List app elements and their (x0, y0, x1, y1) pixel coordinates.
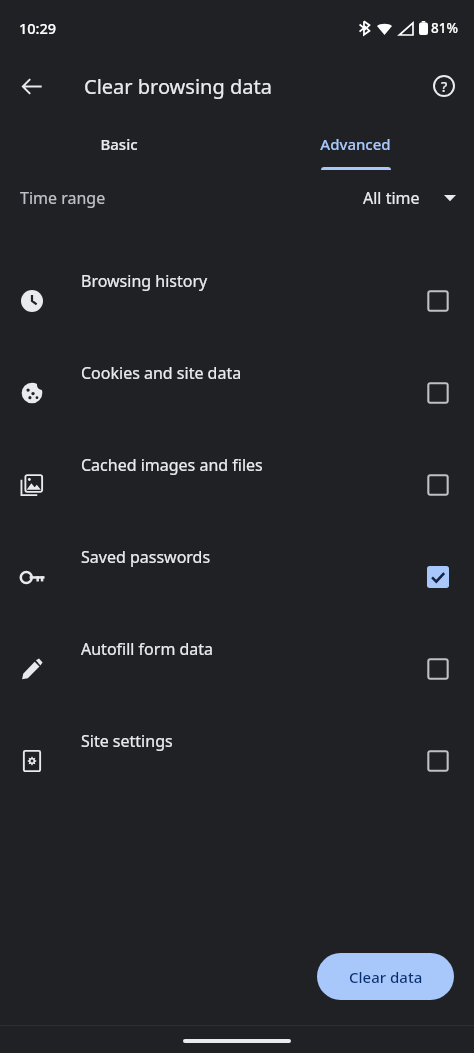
staticText: 10:29 (19, 18, 57, 38)
button[interactable]: Basic (0, 117, 237, 170)
staticText: Autofill form data (81, 638, 214, 660)
staticText: Basic (100, 134, 138, 154)
button[interactable]: Cached images and files (0, 429, 474, 521)
button[interactable]: Clear data (317, 953, 454, 1000)
button[interactable]: Site settings (0, 705, 474, 797)
staticText: Clear data (349, 967, 423, 987)
staticText: Cached images and files (81, 454, 263, 476)
staticText: Advanced (320, 134, 391, 154)
button[interactable]: Advanced (237, 117, 474, 170)
staticText: Time range (20, 187, 106, 209)
button[interactable]: Autofill form data (0, 613, 474, 705)
staticText: All time (363, 187, 420, 209)
staticText: ? (441, 77, 448, 96)
staticText: Cookies and site data (81, 362, 242, 384)
staticText: Clear browsing data (84, 73, 272, 100)
button[interactable]: Time range (0, 170, 474, 225)
staticText: 81% (431, 19, 458, 37)
staticText: Browsing history (81, 270, 208, 292)
staticText: Saved passwords (81, 546, 211, 568)
button[interactable]: Cookies and site data (0, 337, 474, 429)
staticText: Site settings (81, 730, 173, 752)
button[interactable]: Saved passwords (0, 521, 474, 613)
button[interactable]: Browsing history (0, 245, 474, 337)
button[interactable]: Help (422, 64, 466, 108)
button[interactable]: Back (10, 64, 54, 108)
